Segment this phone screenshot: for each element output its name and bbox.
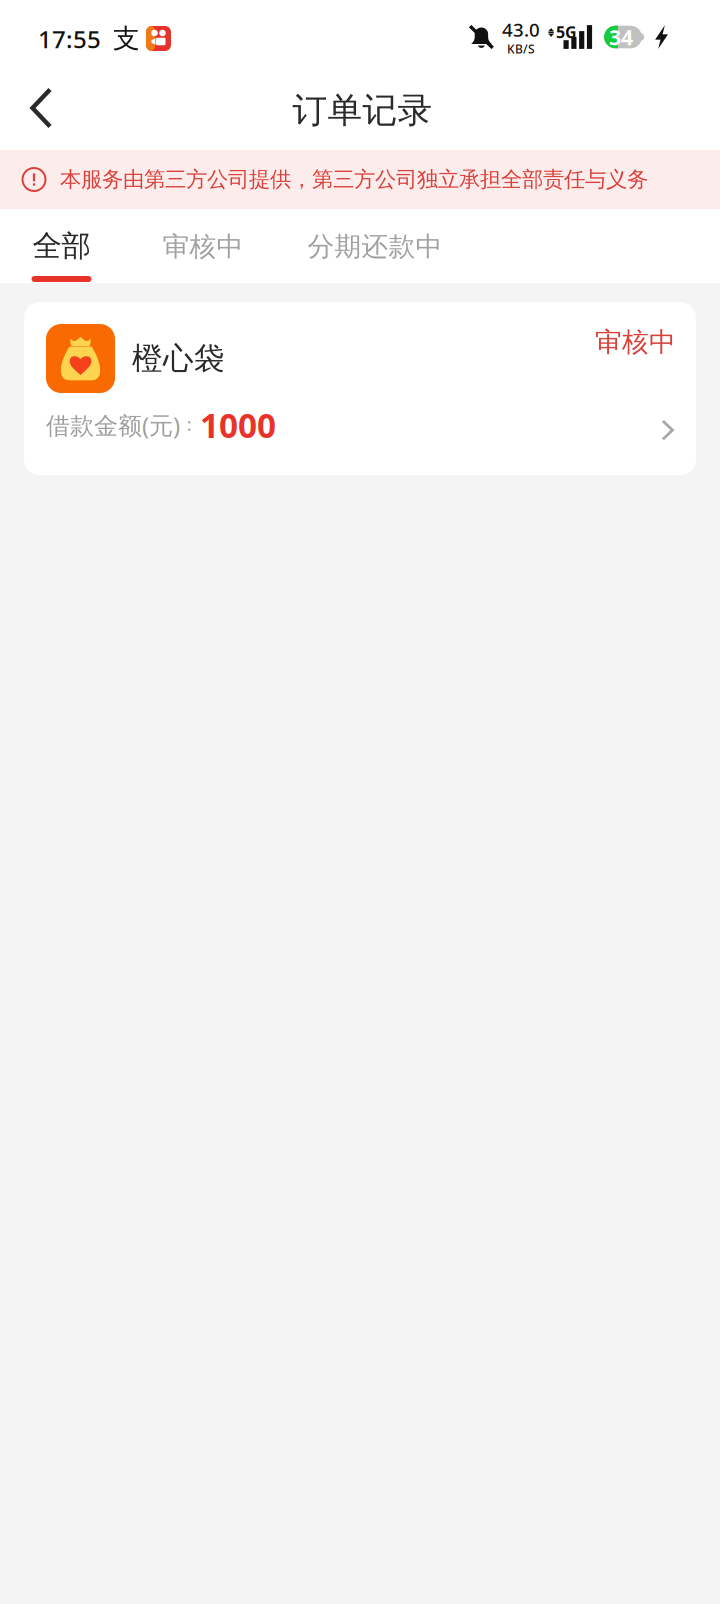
staticText: 借款金额(元) xyxy=(46,409,180,441)
staticText: KB/S xyxy=(507,41,535,57)
staticText: 支 xyxy=(113,22,140,55)
button[interactable]: Back xyxy=(0,74,81,150)
staticText: ： xyxy=(180,413,199,436)
button[interactable]: 橙心袋 xyxy=(24,302,696,475)
staticText: 本服务由第三方公司提供，第三方公司独立承担全部责任与义务 xyxy=(60,166,648,193)
staticText: 34 xyxy=(609,23,633,51)
staticText: 订单记录 xyxy=(292,89,432,132)
staticText: 审核中 xyxy=(162,230,243,263)
staticText: 43.0 xyxy=(502,17,540,42)
staticText: 审核中 xyxy=(595,326,676,358)
staticText: 全部 xyxy=(32,228,90,264)
button[interactable]: 全部 xyxy=(6,209,127,283)
button[interactable]: 审核中 xyxy=(127,209,279,282)
staticText: 17:55 xyxy=(38,23,101,55)
staticText: 1000 xyxy=(200,403,276,447)
staticText: 5G xyxy=(556,21,577,43)
staticText: 橙心袋 xyxy=(132,340,225,377)
button[interactable]: 分期还款中 xyxy=(279,209,471,282)
staticText: 分期还款中 xyxy=(307,230,442,263)
